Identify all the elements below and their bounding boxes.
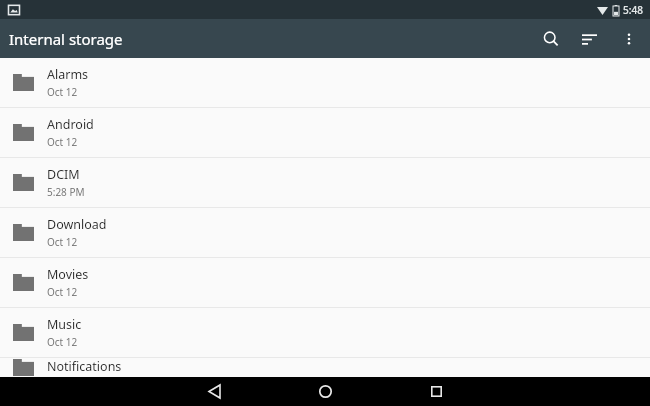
button[interactable]: Alarms [0, 58, 650, 107]
button[interactable]: Download [0, 208, 650, 257]
staticText: Oct 12 [47, 235, 78, 249]
staticText: Oct 12 [47, 135, 78, 149]
staticText: Notifications [47, 358, 122, 375]
staticText: 5:28 PM [47, 185, 85, 199]
staticText: DCIM [47, 166, 80, 183]
button[interactable]: Home [308, 377, 342, 406]
staticText: 5:48 [623, 3, 643, 17]
button[interactable]: Music [0, 308, 650, 357]
staticText: Oct 12 [47, 285, 78, 299]
button[interactable]: Notifications [0, 358, 650, 377]
button[interactable]: More options [609, 19, 648, 58]
staticText: Alarms [47, 66, 89, 83]
staticText: Internal storage [9, 29, 123, 49]
staticText: Movies [47, 266, 89, 283]
staticText: Music [47, 316, 82, 333]
button[interactable]: Recent apps [419, 377, 453, 406]
staticText: Oct 12 [47, 85, 78, 99]
staticText: Download [47, 216, 107, 233]
button[interactable]: Movies [0, 258, 650, 307]
button[interactable]: Sort [570, 19, 609, 58]
button[interactable]: DCIM [0, 158, 650, 207]
button[interactable]: Android [0, 108, 650, 157]
button[interactable]: Back [197, 377, 231, 406]
staticText: Oct 12 [47, 335, 78, 349]
staticText: Android [47, 116, 94, 133]
button[interactable]: Search [531, 19, 570, 58]
